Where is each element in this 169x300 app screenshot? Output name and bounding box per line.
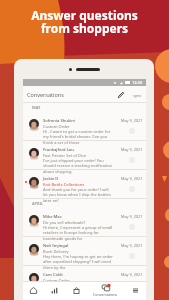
- staticText: Do you sell wholesale?: [43, 220, 86, 225]
- staticText: May 9, 2021: [121, 147, 143, 152]
- staticText: Mike Mac: [43, 214, 62, 220]
- button[interactable]: Home: [23, 282, 44, 299]
- staticText: Hi there, I represent a group of small r…: [43, 225, 113, 242]
- staticText: 12:30: [132, 80, 143, 85]
- staticText: Hey there, I'm hoping to get an order af…: [43, 254, 113, 271]
- staticText: sync: [133, 93, 142, 98]
- staticText: APRIL: [32, 201, 44, 206]
- staticText: Custom Order: [43, 278, 70, 283]
- staticText: May 9, 2021: [121, 118, 143, 123]
- button[interactable]: Shop: [65, 282, 87, 299]
- staticText: Jackie D: [43, 176, 59, 182]
- button[interactable]: Stats: [44, 282, 65, 299]
- staticText: Cam Caldi: [43, 272, 63, 278]
- staticText: May 9, 2021: [121, 214, 143, 219]
- button[interactable]: Cam Caldi: [23, 266, 146, 295]
- staticText: Answer questions from shoppers: [31, 7, 138, 37]
- button[interactable]: Jackie D: [23, 170, 146, 199]
- button[interactable]: Sofronia Shukini: [23, 112, 146, 141]
- staticText: Frankajford Lau: [43, 147, 74, 153]
- staticText: And thank you for your order! I will let…: [43, 187, 113, 204]
- staticText: Custom Order: [43, 124, 70, 129]
- staticText: May 9, 2021: [121, 176, 143, 181]
- staticText: May 9, 2021: [121, 272, 143, 277]
- staticText: Hi - I want to get a custom order for my…: [43, 129, 113, 146]
- staticText: Nalt Imjingal: [43, 243, 69, 249]
- button[interactable]: Frankajford Lau: [23, 141, 146, 170]
- staticText: Conversations: [93, 292, 118, 297]
- staticText: MAY: [32, 105, 41, 110]
- staticText: May 9, 2021: [121, 243, 143, 248]
- button[interactable]: Conversations: [87, 282, 124, 299]
- staticText: I've just shipped your order! You should…: [43, 158, 113, 175]
- staticText: Knit Bottle Collections: [43, 182, 85, 187]
- staticText: Rush Delivery: [43, 249, 69, 254]
- staticText: Conversations: [27, 91, 64, 98]
- button[interactable]: More: [124, 282, 146, 299]
- button[interactable]: Mike Mac: [23, 208, 146, 237]
- button[interactable]: Nalt Imjingal: [23, 237, 146, 266]
- staticText: Sofronia Shukini: [43, 118, 75, 124]
- button[interactable]: Compose: [115, 89, 127, 101]
- button[interactable]: Sync: [131, 89, 143, 101]
- staticText: Fast Painter Set of Dice: [43, 153, 87, 158]
